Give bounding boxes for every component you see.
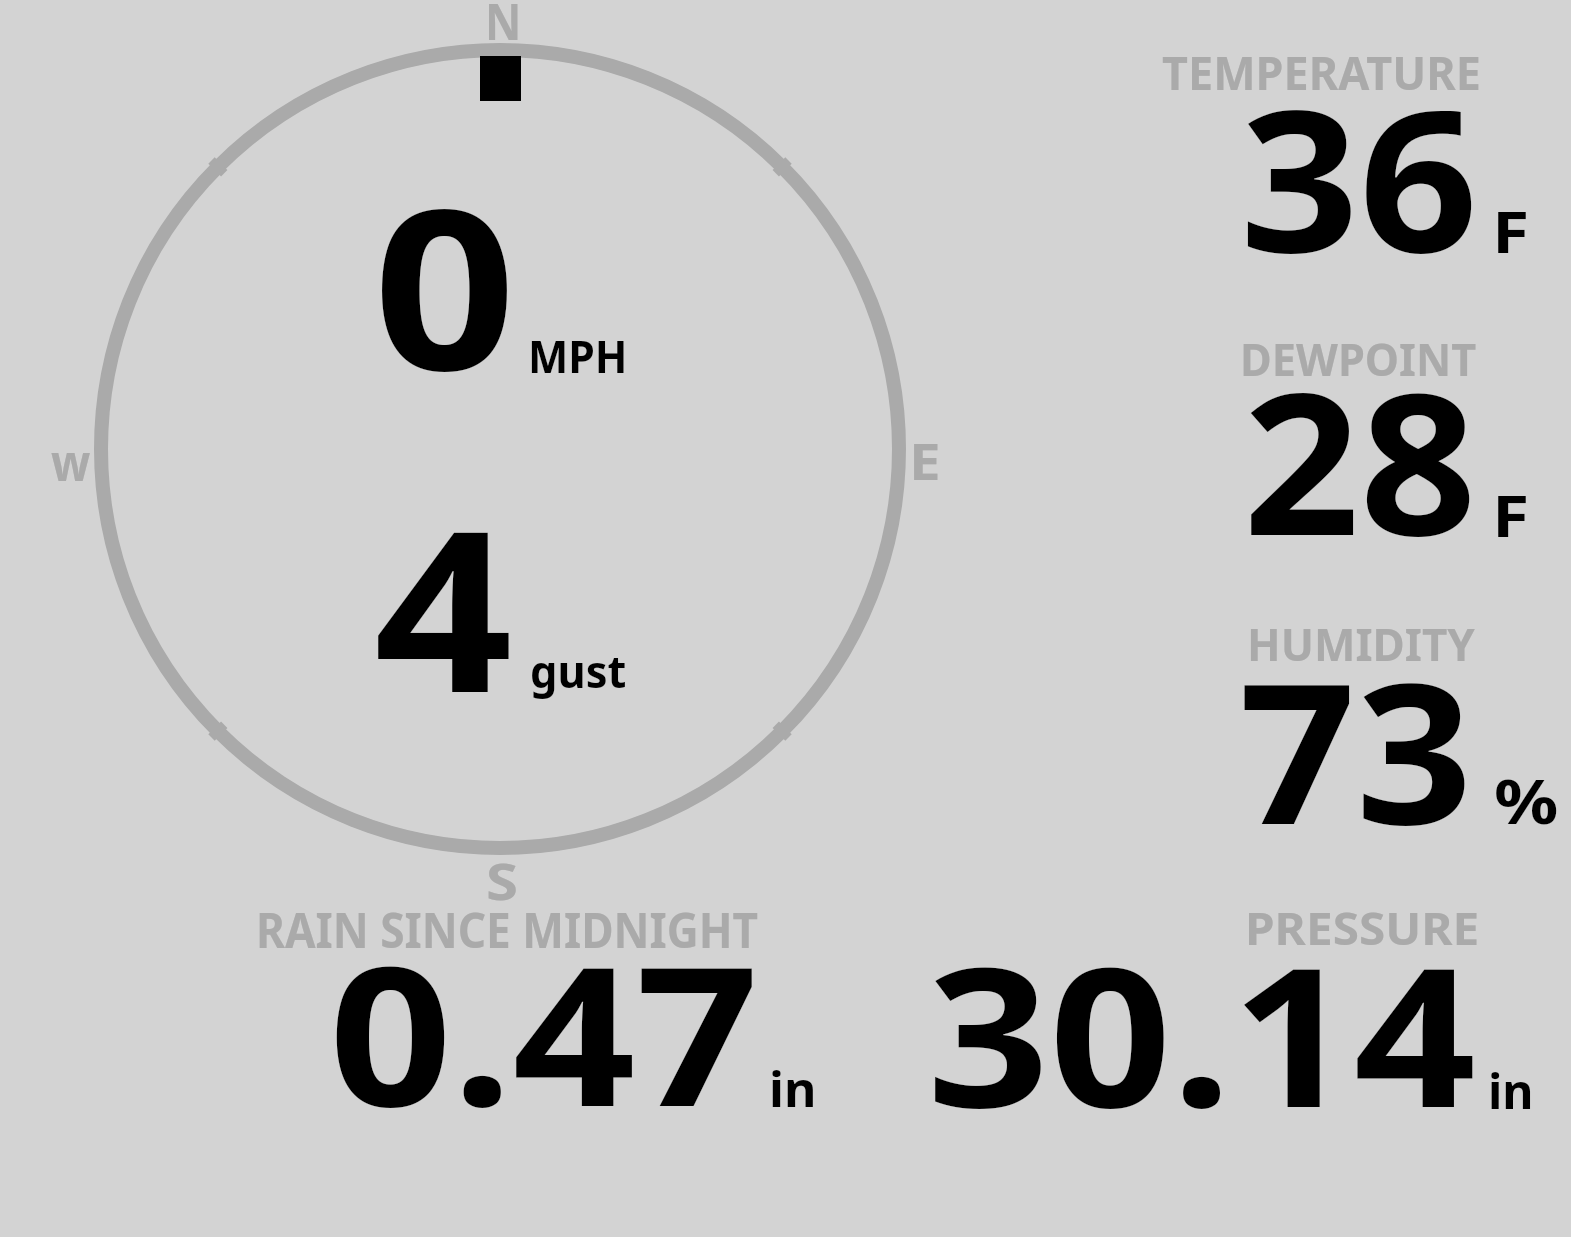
- button[interactable]: Rain since midnight 0.47 inches: [240, 895, 840, 1120]
- staticText: E: [909, 425, 941, 494]
- button[interactable]: Wind 0 miles per hour, gusting 4, from t…: [90, 40, 910, 860]
- staticText: HUMIDITY: [1247, 613, 1475, 674]
- staticText: 0: [373, 134, 517, 435]
- staticText: RAIN SINCE MIDNIGHT: [256, 897, 759, 962]
- button[interactable]: Dew point 28 degrees Fahrenheit: [1130, 325, 1560, 555]
- staticText: 36: [1240, 42, 1479, 309]
- staticText: %: [1494, 759, 1559, 842]
- button[interactable]: Humidity 73 percent: [1130, 610, 1560, 840]
- staticText: MPH: [528, 325, 628, 386]
- staticText: N: [485, 0, 522, 54]
- staticText: S: [486, 845, 519, 914]
- staticText: in: [1488, 1058, 1534, 1123]
- staticText: in: [769, 1055, 817, 1122]
- staticText: gust: [530, 640, 626, 701]
- staticText: 73: [1239, 617, 1473, 881]
- staticText: w: [51, 426, 91, 495]
- staticText: F: [1492, 476, 1530, 554]
- staticText: TEMPERATURE: [1162, 41, 1482, 104]
- staticText: PRESSURE: [1245, 897, 1479, 958]
- staticText: F: [1492, 192, 1530, 270]
- staticText: 30.14: [927, 901, 1476, 1164]
- staticText: 4: [374, 455, 513, 757]
- staticText: 28: [1243, 325, 1477, 592]
- staticText: DEWPOINT: [1240, 328, 1477, 389]
- button[interactable]: Pressure 30.14 inches: [900, 895, 1560, 1120]
- button[interactable]: Temperature 36 degrees Fahrenheit: [1130, 40, 1560, 270]
- staticText: 0.47: [329, 900, 759, 1163]
